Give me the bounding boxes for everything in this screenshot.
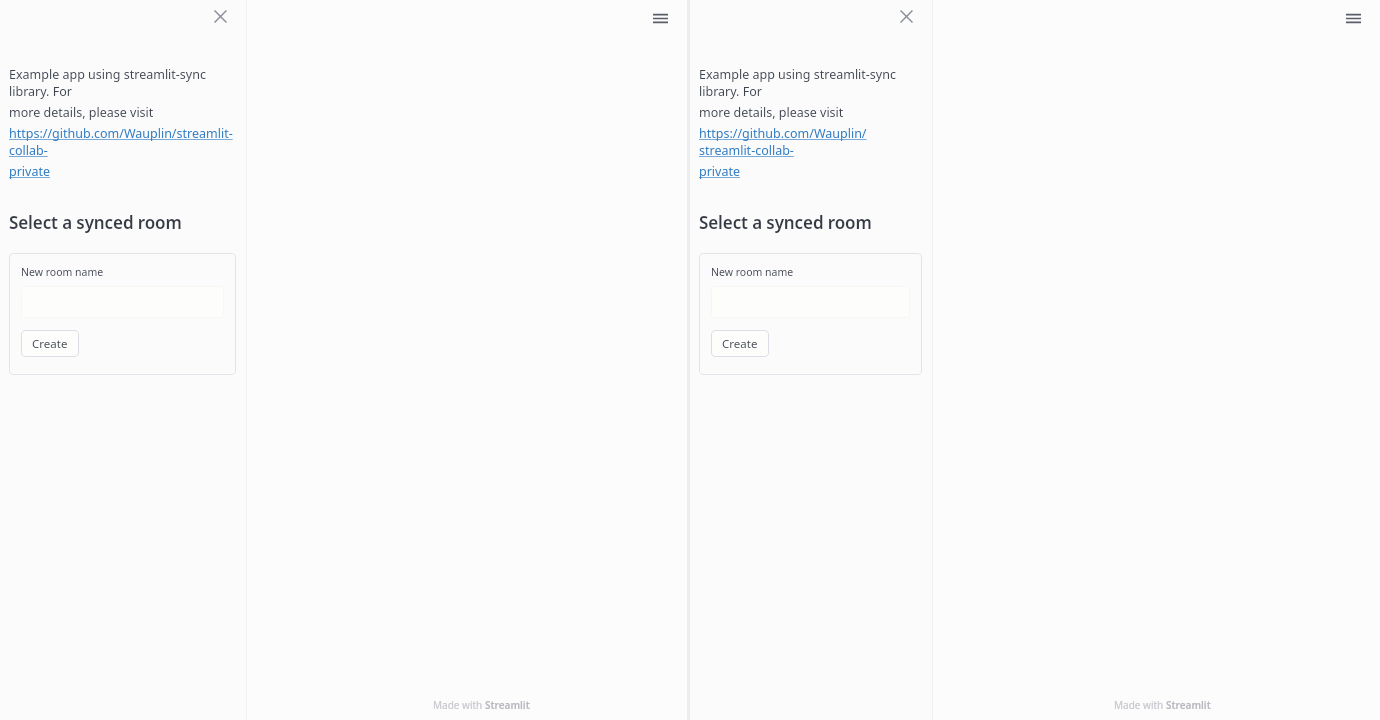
staticText: Example app using streamlit-sync library…	[9, 66, 236, 100]
staticText: https://github.com/Wauplin/streamlit-col…	[9, 125, 236, 159]
staticText: New room name	[711, 265, 794, 279]
staticText: Select a synced room	[699, 211, 872, 234]
button[interactable]: Create	[21, 330, 79, 357]
button[interactable]: Streamlit	[1166, 698, 1211, 712]
staticText: Streamlit	[1166, 698, 1211, 712]
staticText: Made with	[1114, 698, 1166, 712]
staticText: private	[699, 163, 741, 180]
staticText: Streamlit	[485, 698, 530, 712]
button[interactable]: Streamlit	[485, 698, 530, 712]
button[interactable]: Menu	[647, 5, 673, 31]
button[interactable]: Close sidebar	[207, 3, 233, 29]
button[interactable]: Close sidebar	[893, 3, 919, 29]
button[interactable]: https://github.com/Wauplin/streamlit-col…	[9, 125, 236, 180]
staticText: Select a synced room	[9, 211, 182, 234]
button[interactable]: Create	[711, 330, 769, 357]
staticText: Made with	[433, 698, 485, 712]
button[interactable]: https://github.com/Wauplin/streamlit-col…	[699, 125, 922, 180]
staticText: more details, please visit	[9, 104, 154, 121]
staticText: Example app using streamlit-sync library…	[699, 66, 922, 100]
staticText: https://github.com/Wauplin/streamlit-col…	[699, 125, 922, 159]
staticText: New room name	[21, 265, 104, 279]
staticText: private	[9, 163, 51, 180]
staticText: Create	[32, 336, 68, 352]
button[interactable]: Menu	[1340, 5, 1366, 31]
staticText: more details, please visit	[699, 104, 844, 121]
staticText: Create	[722, 336, 758, 352]
